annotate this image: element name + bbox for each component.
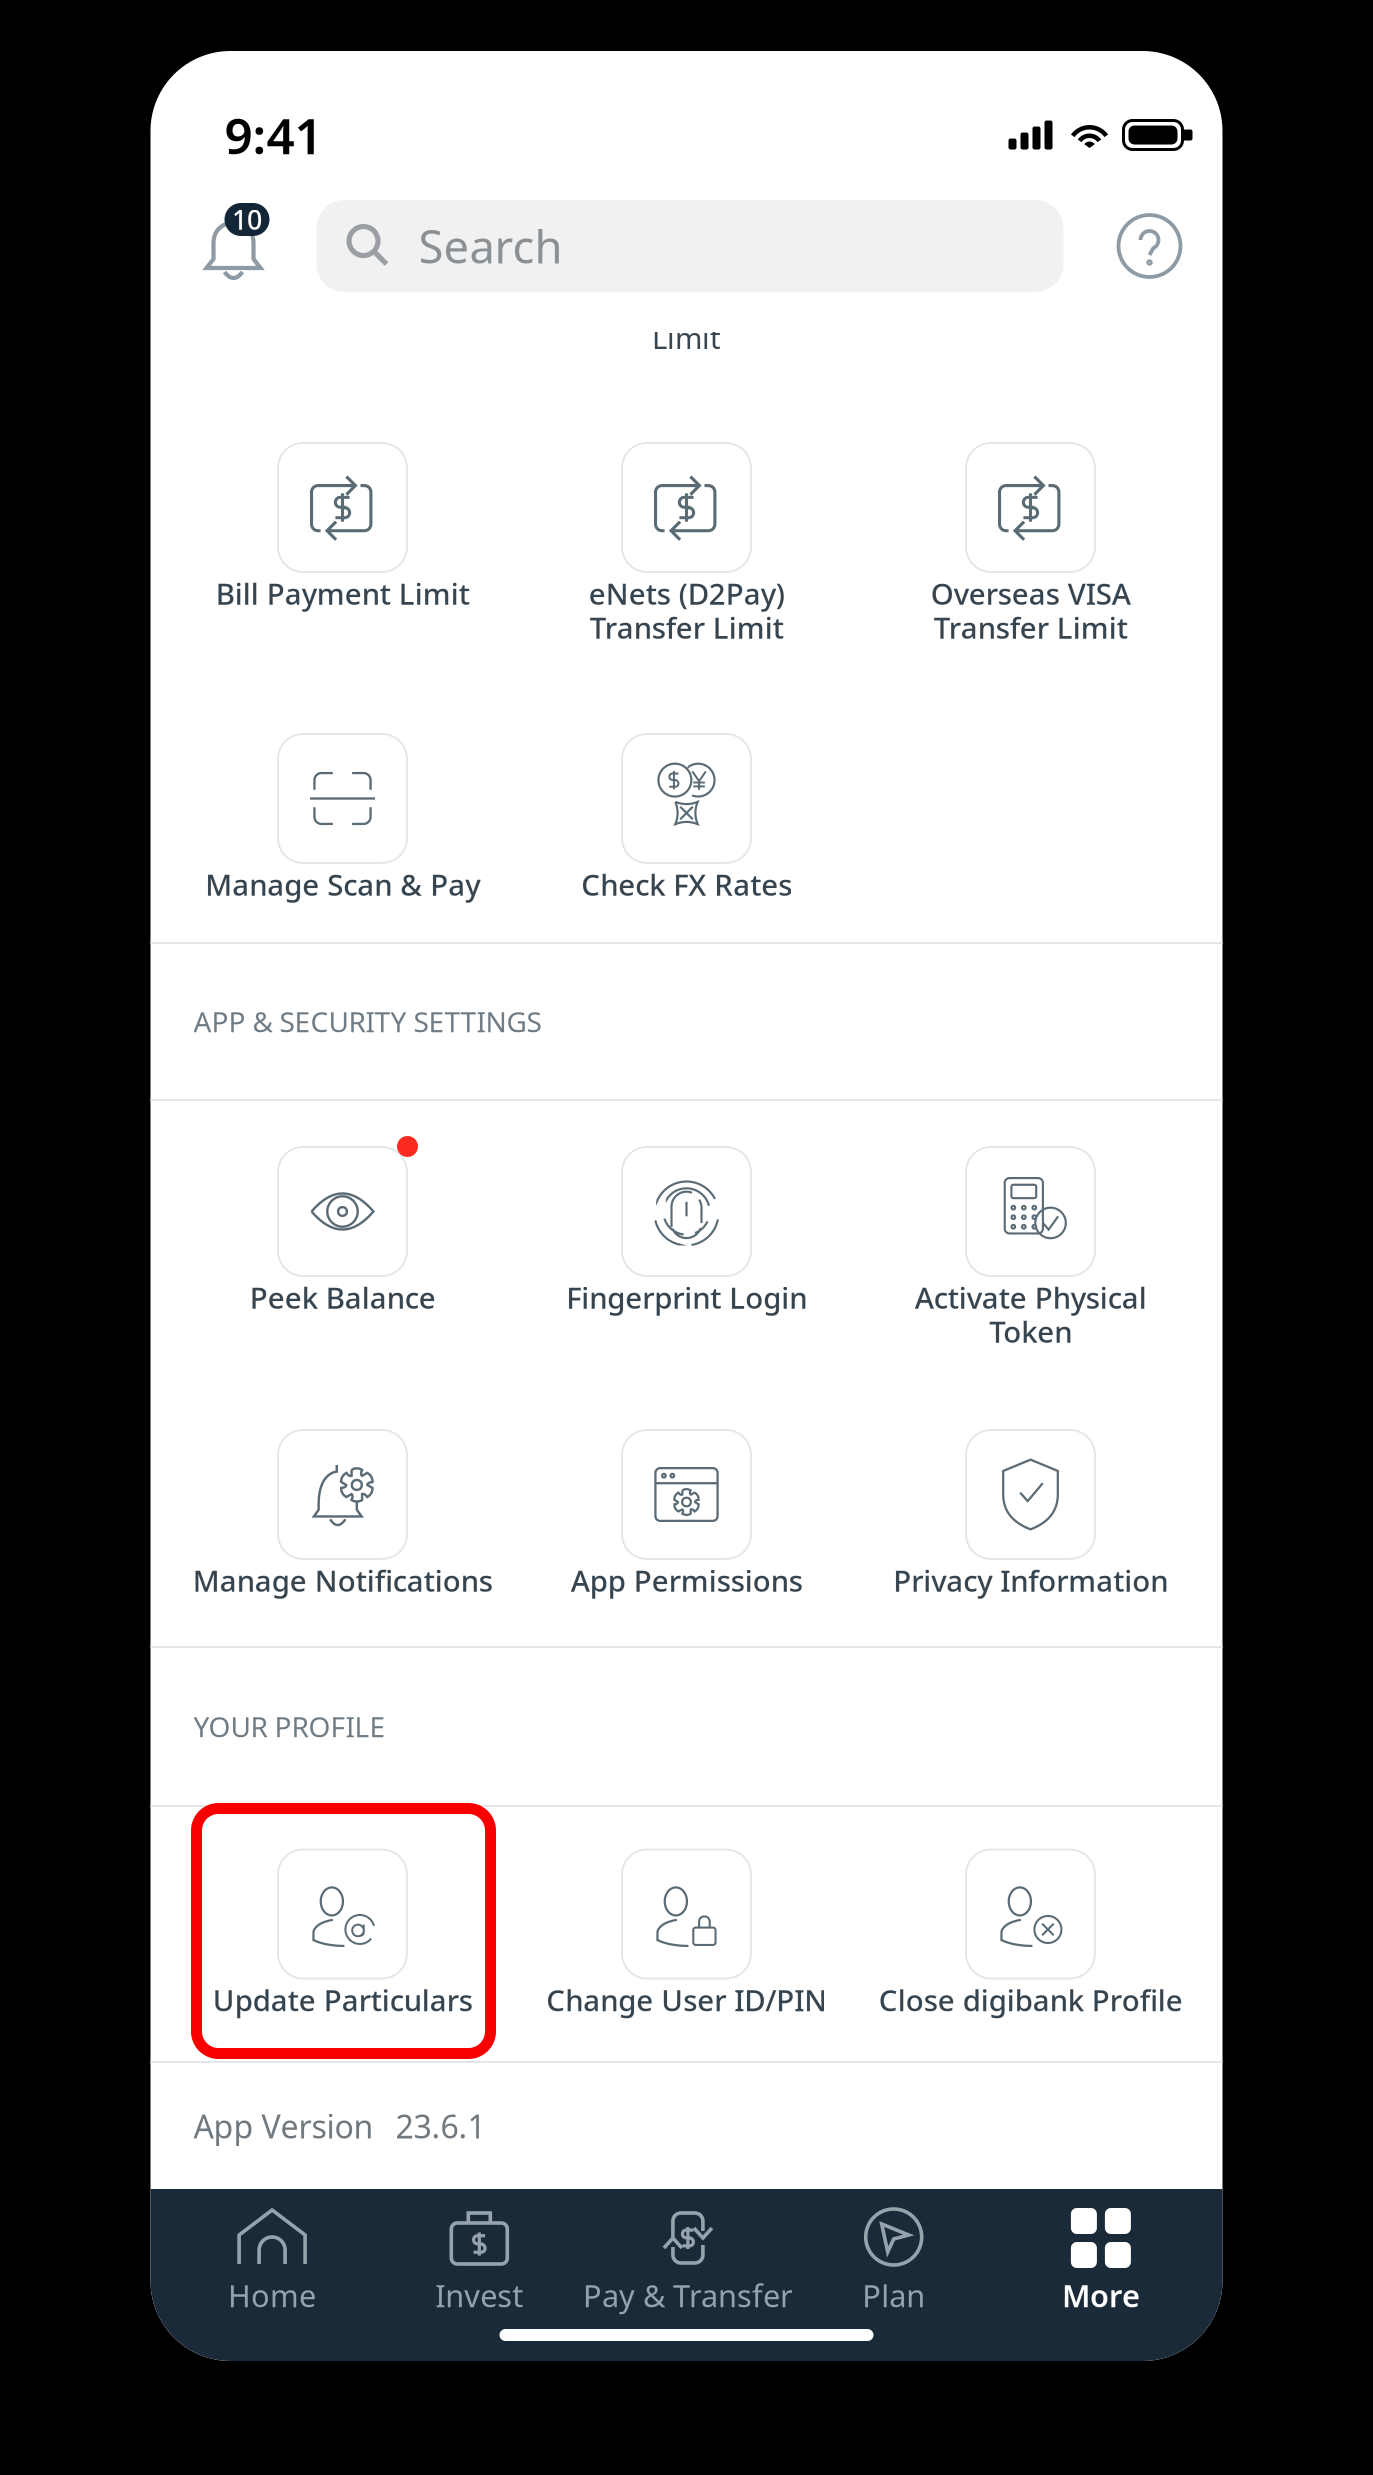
staticText: Activate Physical Token: [914, 1278, 1146, 1351]
button[interactable]: More: [997, 2207, 1204, 2316]
button[interactable]: Manage Notifications: [170, 1430, 514, 1646]
staticText: Search: [418, 216, 562, 276]
staticText: Pay & Transfer: [583, 2275, 793, 2316]
staticText: Manage Notifications: [192, 1561, 492, 1600]
staticText: Close digibank Profile: [878, 1980, 1182, 2019]
button[interactable]: Change User ID/PIN: [514, 1805, 858, 2059]
staticText: APP & SECURITY SETTINGS: [193, 1003, 541, 1040]
staticText: Limit: [652, 318, 721, 357]
button[interactable]: Bill Payment Limit: [170, 443, 514, 734]
button[interactable]: Peek Balance: [170, 1147, 514, 1430]
button[interactable]: Check FX Rates: [514, 734, 858, 942]
staticText: Home: [228, 2275, 316, 2316]
button[interactable]: Overseas VISA Transfer Limit: [858, 443, 1202, 734]
button[interactable]: Manage Scan & Pay: [170, 734, 514, 942]
staticText: Bill Payment Limit: [215, 574, 469, 613]
button[interactable]: Home: [168, 2207, 376, 2316]
staticText: 9:41: [224, 102, 322, 168]
button[interactable]: Search: [316, 200, 1063, 292]
button[interactable]: Close digibank Profile: [858, 1805, 1202, 2059]
button[interactable]: Pay & Transfer: [583, 2207, 790, 2316]
staticText: Check FX Rates: [581, 865, 792, 904]
button[interactable]: Privacy Information: [858, 1430, 1202, 1646]
staticText: Update Particulars: [212, 1980, 472, 2019]
staticText: Change User ID/PIN: [546, 1980, 827, 2019]
staticText: Plan: [862, 2275, 925, 2316]
staticText: Manage Scan & Pay: [205, 865, 480, 904]
staticText: Peek Balance: [249, 1278, 435, 1317]
staticText: 23.6.1: [395, 2105, 485, 2147]
staticText: Invest: [435, 2275, 523, 2316]
staticText: 10: [232, 202, 262, 237]
staticText: eNets (D2Pay) Transfer Limit: [588, 574, 784, 647]
staticText: More: [1062, 2275, 1140, 2316]
button[interactable]: Invest: [376, 2207, 583, 2316]
button[interactable]: Plan: [790, 2207, 997, 2316]
staticText: Privacy Information: [893, 1561, 1168, 1600]
staticText: App Permissions: [570, 1561, 802, 1600]
button[interactable]: Help: [1116, 213, 1182, 279]
button[interactable]: App Permissions: [514, 1430, 858, 1646]
button[interactable]: Notifications: [204, 201, 294, 291]
staticText: Fingerprint Login: [566, 1278, 807, 1317]
button[interactable]: eNets (D2Pay) Transfer Limit: [514, 443, 858, 734]
staticText: App Version: [193, 2105, 373, 2147]
staticText: YOUR PROFILE: [193, 1708, 385, 1745]
button[interactable]: Update Particulars: [170, 1805, 514, 2059]
staticText: Overseas VISA Transfer Limit: [930, 574, 1130, 647]
button[interactable]: Activate Physical Token: [858, 1147, 1202, 1430]
button[interactable]: Fingerprint Login: [514, 1147, 858, 1430]
